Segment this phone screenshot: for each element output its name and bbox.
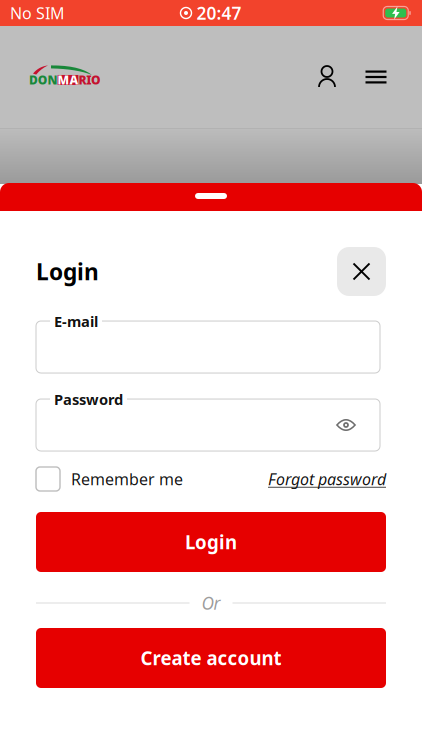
staticText: Or bbox=[201, 591, 220, 614]
staticText: Create account bbox=[140, 646, 281, 670]
staticText: MA bbox=[58, 72, 78, 88]
button[interactable]: Menu bbox=[356, 57, 396, 97]
staticText: Forgot password bbox=[268, 468, 386, 490]
button[interactable]: Account bbox=[307, 57, 347, 97]
staticText: RIO bbox=[78, 72, 101, 88]
staticText: Remember me bbox=[71, 468, 183, 490]
staticText: Login bbox=[185, 530, 237, 554]
staticText: Login bbox=[36, 256, 99, 286]
button[interactable]: Remember me bbox=[36, 467, 183, 491]
staticText: No SIM bbox=[10, 2, 65, 24]
staticText: DON bbox=[29, 72, 58, 88]
button[interactable]: Forgot password bbox=[268, 468, 386, 490]
staticText: 20:47 bbox=[196, 1, 241, 24]
staticText: E-mail bbox=[54, 311, 98, 331]
button[interactable]: Close bbox=[337, 247, 386, 296]
staticText: Password bbox=[54, 389, 123, 409]
button[interactable]: Login bbox=[36, 512, 386, 572]
button[interactable]: Create account bbox=[36, 628, 386, 688]
